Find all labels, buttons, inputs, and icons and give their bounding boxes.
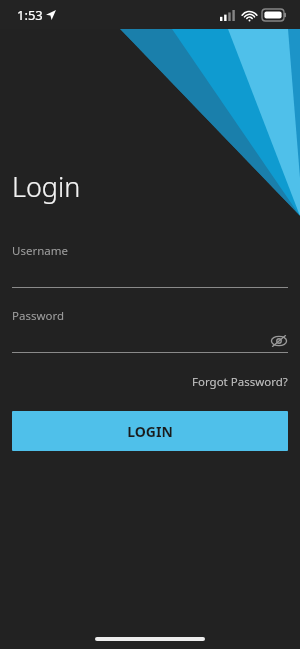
staticText: Login: [12, 168, 81, 205]
staticText: Username: [12, 243, 68, 259]
staticText: LOGIN: [127, 422, 173, 441]
button[interactable]: Username: [0, 243, 300, 288]
button[interactable]: Password: [0, 308, 300, 353]
staticText: 1:53: [17, 6, 43, 24]
button[interactable]: Toggle password visibility: [270, 332, 288, 350]
button[interactable]: LOGIN: [12, 411, 288, 451]
button[interactable]: Forgot Password?: [180, 370, 300, 394]
staticText: Password: [12, 308, 65, 324]
